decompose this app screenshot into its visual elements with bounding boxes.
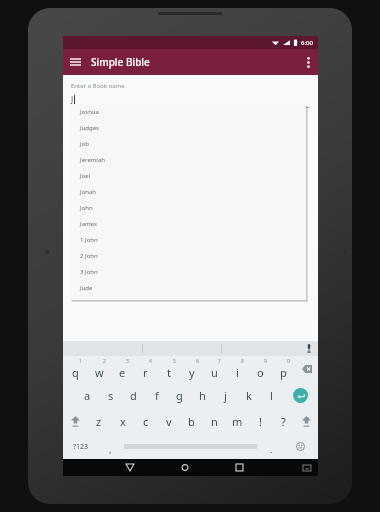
button[interactable]: d: [122, 382, 145, 408]
button[interactable]: Recent apps: [231, 459, 248, 476]
button[interactable]: Backspace: [295, 356, 318, 382]
staticText: o: [257, 365, 264, 380]
button[interactable]: j: [214, 382, 237, 408]
staticText: John: [80, 204, 93, 212]
button[interactable]: s: [99, 382, 122, 408]
button[interactable]: 3: [111, 356, 134, 382]
button[interactable]: Space: [121, 434, 260, 459]
button[interactable]: Shift: [295, 408, 318, 434]
button[interactable]: ,: [99, 434, 121, 459]
button[interactable]: f: [145, 382, 168, 408]
staticText: t: [167, 365, 171, 380]
staticText: f: [155, 388, 159, 403]
button[interactable]: x: [111, 408, 134, 434]
button[interactable]: c: [134, 408, 157, 434]
button[interactable]: g: [168, 382, 191, 408]
button[interactable]: Joshua: [70, 104, 306, 120]
staticText: q: [72, 365, 79, 380]
button[interactable]: z: [87, 408, 111, 434]
button[interactable]: Open navigation drawer: [63, 52, 88, 73]
staticText: Jeremiah: [80, 156, 105, 164]
button[interactable]: 7: [203, 356, 226, 382]
staticText: ?123: [73, 442, 89, 452]
staticText: c: [143, 414, 149, 429]
staticText: 6: [196, 358, 199, 365]
button[interactable]: Shift: [63, 408, 87, 434]
button[interactable]: Switch keyboard: [299, 461, 315, 475]
button[interactable]: n: [203, 408, 226, 434]
button[interactable]: 5: [157, 356, 180, 382]
button[interactable]: 4: [134, 356, 157, 382]
staticText: ,: [109, 443, 112, 455]
staticText: J: [71, 94, 74, 105]
staticText: e: [119, 365, 126, 380]
button[interactable]: 0: [272, 356, 295, 382]
button[interactable]: h: [191, 382, 214, 408]
button[interactable]: k: [237, 382, 260, 408]
staticText: 7: [218, 358, 221, 365]
staticText: y: [189, 365, 195, 380]
staticText: r: [143, 365, 148, 380]
staticText: .: [270, 443, 273, 455]
staticText: 4: [149, 358, 152, 365]
button[interactable]: 6: [180, 356, 203, 382]
button[interactable]: Judges: [70, 120, 306, 136]
staticText: l: [270, 388, 273, 403]
button[interactable]: More options: [299, 51, 318, 74]
staticText: p: [280, 365, 287, 380]
staticText: m: [232, 414, 243, 429]
staticText: 3 John: [80, 268, 98, 276]
button[interactable]: 1: [63, 356, 87, 382]
staticText: 3: [126, 358, 129, 365]
staticText: 8: [241, 358, 244, 365]
staticText: d: [130, 388, 137, 403]
button[interactable]: Emoji: [282, 434, 318, 459]
staticText: 1 John: [80, 236, 98, 244]
staticText: Judges: [80, 124, 99, 132]
staticText: 2 John: [80, 252, 98, 260]
button[interactable]: ?123: [63, 434, 99, 459]
staticText: i: [236, 365, 239, 380]
button[interactable]: 9: [249, 356, 272, 382]
button[interactable]: v: [157, 408, 180, 434]
button[interactable]: Job: [70, 136, 306, 152]
staticText: s: [108, 388, 114, 403]
button[interactable]: J: [71, 94, 310, 105]
staticText: k: [246, 388, 252, 403]
staticText: 9: [264, 358, 267, 365]
staticText: Joel: [80, 172, 91, 180]
button[interactable]: 2 John: [70, 248, 306, 264]
button[interactable]: Jonah: [70, 184, 306, 200]
staticText: Joshua: [80, 108, 99, 116]
button[interactable]: m: [226, 408, 249, 434]
button[interactable]: Enter: [283, 382, 318, 408]
button[interactable]: Back: [121, 459, 139, 476]
button[interactable]: Jeremiah: [70, 152, 306, 168]
staticText: James: [80, 220, 97, 228]
button[interactable]: 1 John: [70, 232, 306, 248]
staticText: j: [224, 388, 227, 403]
button[interactable]: Voice input: [300, 344, 318, 353]
button[interactable]: Home: [176, 459, 194, 476]
button[interactable]: 8: [226, 356, 249, 382]
button[interactable]: .: [260, 434, 282, 459]
staticText: Jude: [80, 284, 93, 292]
button[interactable]: a: [76, 382, 99, 408]
button[interactable]: John: [70, 200, 306, 216]
staticText: x: [120, 414, 126, 429]
button[interactable]: 3 John: [70, 264, 306, 280]
button[interactable]: b: [180, 408, 203, 434]
staticText: Simple Bible: [91, 55, 150, 69]
button[interactable]: ?: [272, 408, 295, 434]
staticText: !: [259, 414, 262, 429]
staticText: 1: [79, 358, 82, 365]
staticText: v: [166, 414, 172, 429]
button[interactable]: Jude: [70, 280, 306, 296]
button[interactable]: Joel: [70, 168, 306, 184]
button[interactable]: 2: [87, 356, 111, 382]
button[interactable]: l: [260, 382, 283, 408]
button[interactable]: James: [70, 216, 306, 232]
staticText: b: [188, 414, 195, 429]
button[interactable]: !: [249, 408, 272, 434]
staticText: n: [211, 414, 218, 429]
